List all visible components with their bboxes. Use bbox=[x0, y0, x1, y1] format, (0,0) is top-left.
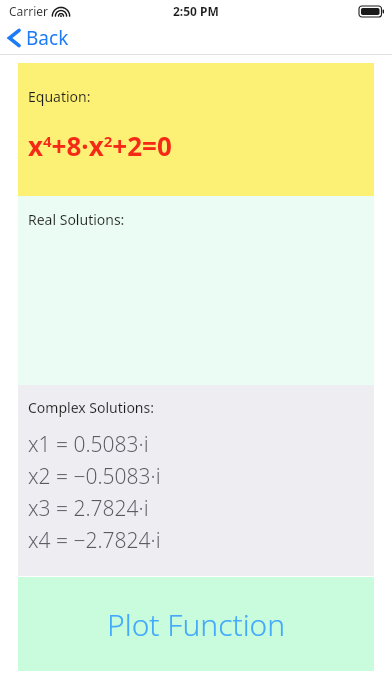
button[interactable]: Back bbox=[8, 25, 69, 51]
staticText: 2:50 PM bbox=[173, 3, 219, 19]
staticText: x4 = −2.7824·i bbox=[28, 526, 161, 555]
staticText: Back bbox=[26, 25, 69, 51]
staticText: x3 = 2.7824·i bbox=[28, 494, 149, 523]
staticText: Complex Solutions: bbox=[28, 398, 154, 417]
staticText: Equation: bbox=[28, 87, 91, 106]
staticText: x1 = 0.5083·i bbox=[28, 430, 149, 459]
staticText: x4+8·x2+2=0 bbox=[28, 128, 172, 163]
staticText: Plot Function bbox=[107, 604, 286, 645]
staticText: Carrier bbox=[9, 3, 49, 19]
staticText: x2 = −0.5083·i bbox=[28, 462, 161, 491]
other: Back bbox=[8, 28, 20, 48]
staticText: Real Solutions: bbox=[28, 210, 125, 229]
button[interactable]: Plot Function bbox=[18, 577, 374, 671]
